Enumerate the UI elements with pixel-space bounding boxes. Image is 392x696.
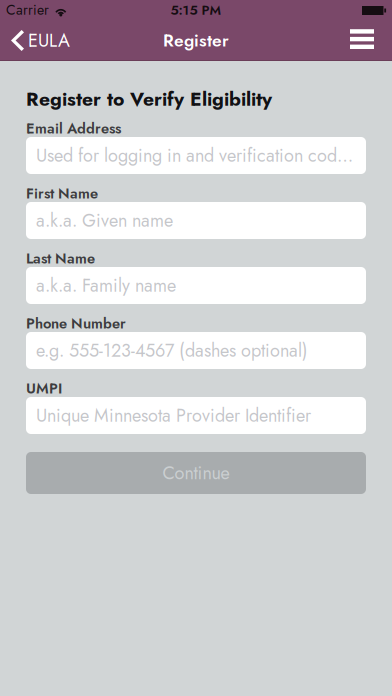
staticText: Carrier: [6, 0, 49, 20]
staticText: Continue: [162, 460, 229, 486]
staticText: 5:15 PM: [170, 0, 221, 20]
staticText: Register: [163, 28, 229, 53]
staticText: e.g. 555-123-4567 (dashes optional): [36, 337, 308, 363]
button[interactable]: Continue: [26, 452, 366, 494]
staticText: Register to Verify Eligibility: [26, 85, 272, 113]
staticText: EULA: [28, 27, 70, 53]
staticText: First Name: [26, 183, 98, 204]
staticText: Email Address: [26, 118, 121, 139]
staticText: Used for logging in and verification cod…: [36, 142, 353, 168]
staticText: UMPI: [26, 378, 62, 399]
button[interactable]: Menu: [272, 20, 392, 61]
staticText: a.k.a. Given name: [36, 207, 173, 233]
staticText: Last Name: [26, 248, 95, 269]
staticText: a.k.a. Family name: [36, 272, 176, 298]
button[interactable]: EULA: [0, 20, 120, 61]
staticText: Unique Minnesota Provider Identifier: [36, 402, 311, 428]
staticText: Phone Number: [26, 313, 126, 334]
